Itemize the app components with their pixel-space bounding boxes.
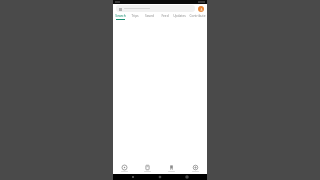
button[interactable]: Contribute: [187, 13, 207, 20]
button[interactable]: Home: [158, 175, 162, 179]
staticText: Updates: [173, 14, 186, 18]
button[interactable]: Search: [113, 13, 127, 20]
button[interactable]: Open navigation menu: [118, 7, 122, 11]
button[interactable]: Account: [198, 6, 204, 12]
staticText: Feed: [161, 14, 169, 18]
button[interactable]: Saved: [142, 13, 157, 20]
button[interactable]: Contribute: [183, 163, 207, 174]
staticText: Contribute: [189, 14, 206, 18]
button[interactable]: Explore: [113, 163, 136, 174]
button[interactable]: Recent apps: [185, 175, 189, 179]
staticText: Search: [115, 14, 126, 18]
button[interactable]: Open navigation menu: [116, 5, 195, 12]
staticText: Trips: [131, 14, 139, 18]
staticText: Saved: [145, 14, 154, 18]
button[interactable]: Saved: [159, 163, 183, 174]
button[interactable]: Trips: [127, 13, 142, 20]
button[interactable]: Back: [131, 175, 135, 179]
button[interactable]: Updates: [172, 13, 187, 20]
button[interactable]: Feed: [157, 13, 172, 20]
button[interactable]: Go: [136, 163, 159, 174]
